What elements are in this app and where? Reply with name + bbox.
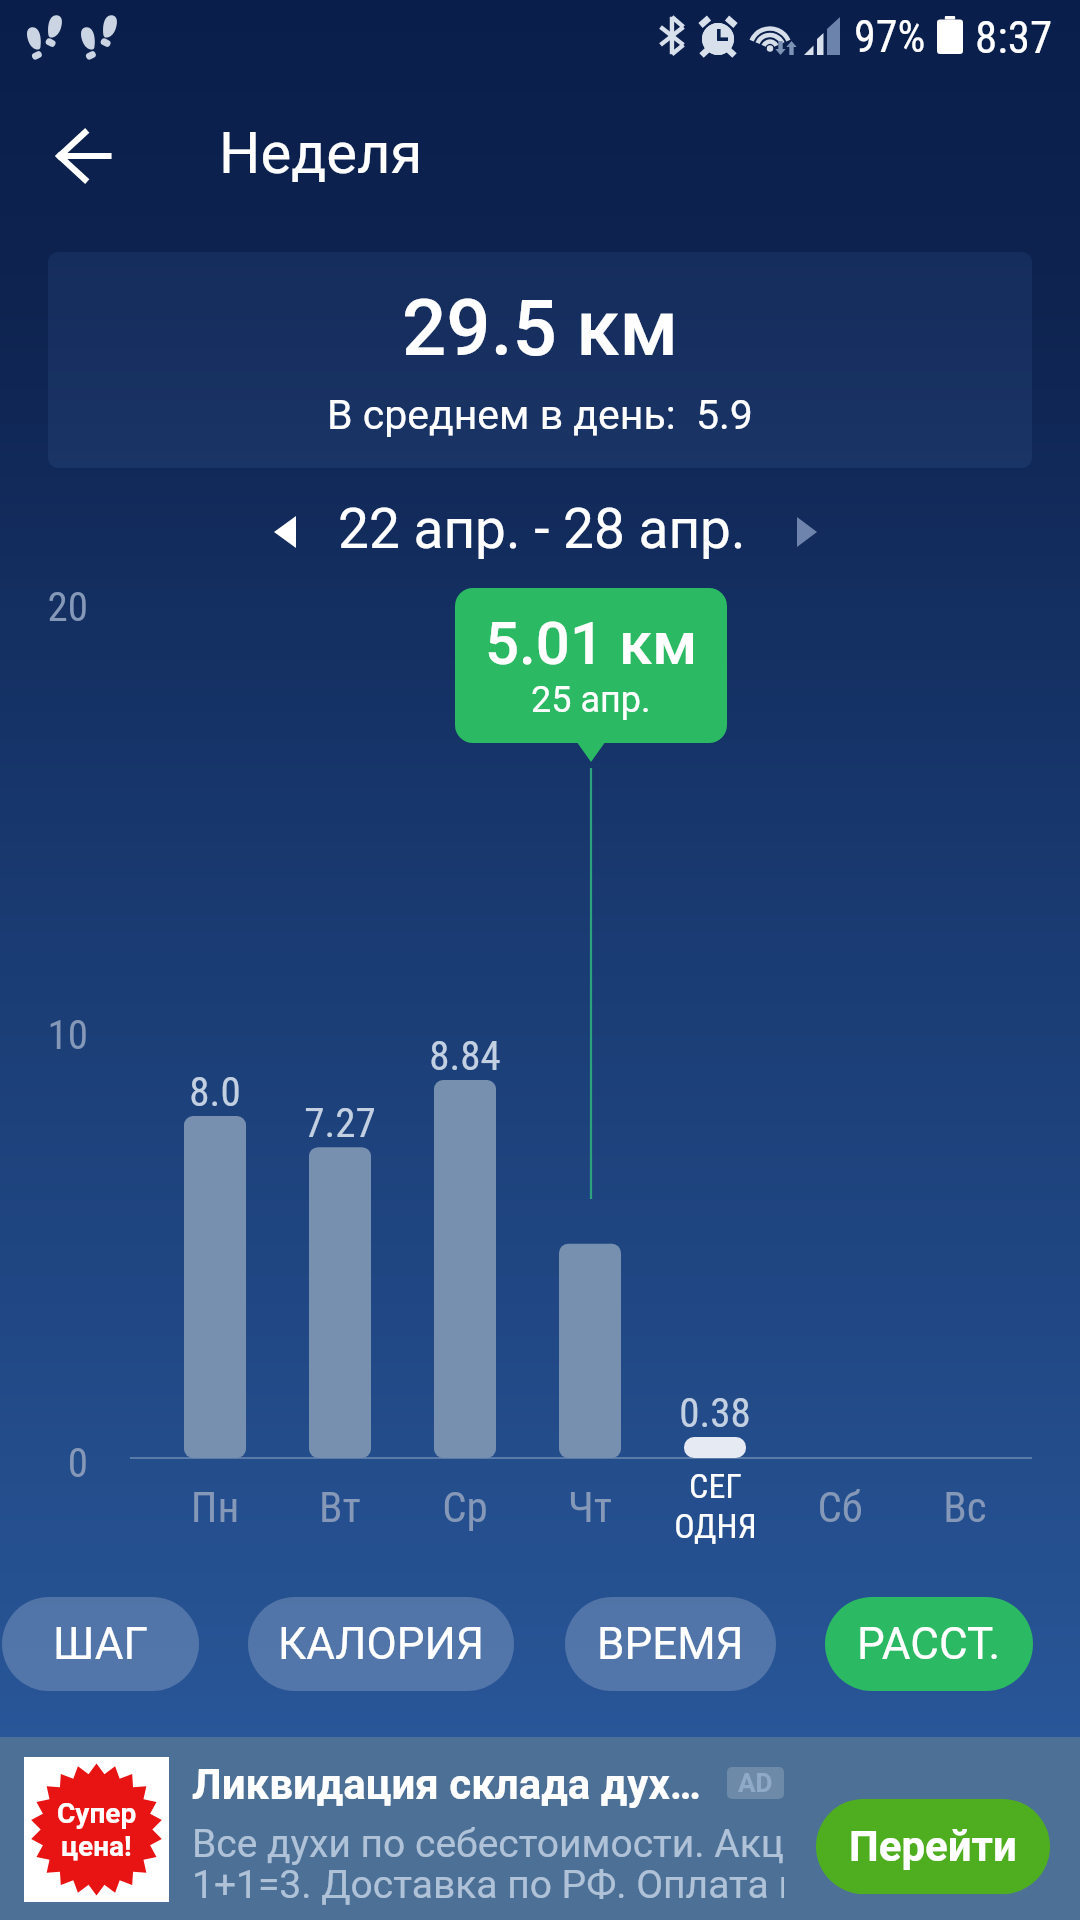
staticText: 97% — [854, 11, 926, 63]
button[interactable]: КАЛОРИЯ — [248, 1597, 514, 1691]
staticText: 20 — [40, 583, 88, 631]
staticText: ОДНЯ — [674, 1506, 757, 1546]
staticText: 0.38 — [625, 1389, 805, 1437]
staticText: 8:37 — [975, 11, 1053, 64]
staticText: Вт — [250, 1482, 430, 1532]
staticText: 5.01 км — [485, 608, 698, 678]
staticText: 1+1=3. Доставка по РФ. Оплата п… — [192, 1862, 784, 1908]
button[interactable]: Back — [36, 108, 132, 204]
button[interactable]: Супер — [0, 1737, 1080, 1920]
staticText: 8.0 — [125, 1068, 305, 1116]
staticText: Сб — [750, 1482, 930, 1532]
staticText: ВРЕМЯ — [597, 1618, 744, 1670]
staticText: Чт — [500, 1482, 680, 1532]
staticText: Вс — [875, 1482, 1055, 1532]
staticText: РАССТ. — [857, 1618, 1001, 1670]
staticText: 8.84 — [375, 1032, 555, 1080]
button[interactable]: Перейти — [816, 1799, 1050, 1894]
staticText: СЕГ — [689, 1466, 742, 1506]
staticText: 7.27 — [250, 1099, 430, 1147]
button[interactable]: 29.5 км — [48, 252, 1032, 468]
staticText: 25 апр. — [531, 679, 651, 721]
staticText: Неделя — [219, 119, 423, 187]
staticText: 10 — [40, 1011, 88, 1059]
staticText: 0 — [40, 1439, 88, 1487]
staticText: Все духи по себестоимости. Акция — [192, 1821, 784, 1867]
staticText: Супер — [57, 1797, 137, 1830]
staticText: 29.5 км — [402, 283, 679, 374]
button[interactable]: Previous week — [245, 490, 325, 574]
staticText: КАЛОРИЯ — [278, 1618, 484, 1670]
button[interactable]: 5.01 км — [455, 588, 727, 743]
staticText: Пн — [125, 1482, 305, 1532]
button[interactable]: ВРЕМЯ — [565, 1597, 776, 1691]
staticText: 22 апр. - 28 апр. — [338, 497, 746, 561]
staticText: Ликвидация склада дух… — [192, 1760, 712, 1809]
button[interactable]: РАССТ. — [825, 1597, 1033, 1691]
button[interactable]: ШАГ — [2, 1597, 199, 1691]
button[interactable]: Next week — [767, 490, 847, 574]
staticText: Перейти — [849, 1822, 1017, 1871]
staticText: ШАГ — [53, 1618, 148, 1670]
staticText: AD — [738, 1768, 773, 1798]
staticText: цена! — [61, 1830, 132, 1863]
staticText: Ср — [375, 1482, 555, 1532]
staticText: В среднем в день: 5.9 — [327, 391, 753, 439]
